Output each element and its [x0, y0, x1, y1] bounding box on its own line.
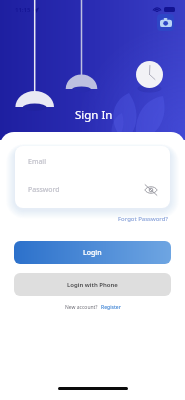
button[interactable]: Forgot Password? [116, 213, 170, 225]
button[interactable]: Screenshot [157, 14, 174, 31]
button[interactable]: Login with Phone [14, 273, 171, 296]
button[interactable]: Password [15, 174, 170, 205]
staticText: Login with Phone [67, 281, 118, 289]
button[interactable]: Login [14, 241, 171, 264]
staticText: 11:15 [15, 6, 31, 14]
staticText: Sign In [75, 107, 113, 123]
button[interactable]: Toggle password visibility [144, 184, 158, 196]
staticText: Forgot Password? [118, 215, 168, 223]
staticText: New account? [65, 304, 98, 311]
staticText: Password [28, 185, 60, 195]
staticText: Email [28, 157, 46, 167]
button[interactable]: Register [101, 304, 121, 311]
staticText: Login [83, 248, 102, 258]
button[interactable]: Email [15, 146, 170, 177]
